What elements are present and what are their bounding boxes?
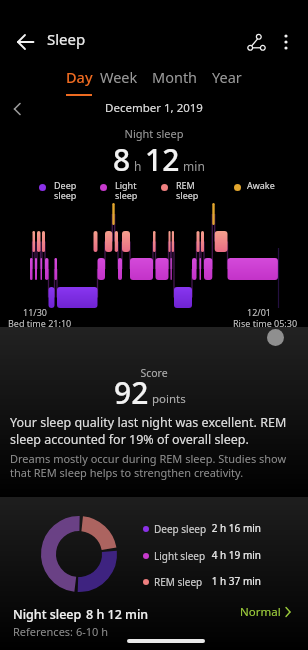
staticText: min <box>180 158 205 174</box>
staticText: 12 <box>145 139 180 180</box>
staticText: Light sleep <box>154 549 206 563</box>
staticText: Rise time 05:30 <box>233 317 298 329</box>
staticText: Week <box>100 67 138 87</box>
staticText: December 1, 2019 <box>0 100 308 116</box>
staticText: 11/30 <box>8 306 62 318</box>
button[interactable] <box>146 64 206 98</box>
button[interactable]: Normal <box>240 601 300 623</box>
staticText: Year <box>212 67 242 87</box>
staticText: 8 <box>113 139 131 180</box>
staticText: 92 <box>114 372 149 413</box>
staticText: Sleep <box>47 29 86 49</box>
staticText: Your sleep quality last night was excell… <box>10 414 287 447</box>
staticText: Deep sleep <box>54 179 77 202</box>
staticText: 4 h 19 min <box>191 548 261 562</box>
staticText: 1 h 37 min <box>191 574 261 588</box>
staticText: REM sleep <box>154 575 203 589</box>
staticText: Dreams mostly occur during REM sleep. St… <box>10 451 287 481</box>
staticText: REM sleep <box>176 179 199 202</box>
staticText: Awake <box>247 179 275 191</box>
staticText: Bed time 21:10 <box>8 317 72 329</box>
staticText: 2 h 16 min <box>191 521 261 535</box>
staticText: Night sleep <box>13 606 82 623</box>
staticText: Day <box>66 67 93 87</box>
staticText: 8 h 12 min <box>86 606 149 623</box>
staticText: Month <box>152 67 198 87</box>
button[interactable] <box>240 26 272 58</box>
button[interactable] <box>267 329 284 346</box>
button[interactable] <box>94 64 144 98</box>
staticText: h <box>131 158 145 174</box>
staticText: Night sleep <box>0 126 308 141</box>
button[interactable] <box>206 64 252 98</box>
staticText: points <box>149 391 186 407</box>
button[interactable] <box>56 64 102 98</box>
button[interactable] <box>8 26 42 58</box>
staticText: Score <box>0 366 308 380</box>
staticText: Normal <box>240 604 281 620</box>
button[interactable] <box>4 96 30 122</box>
staticText: Deep sleep <box>154 522 207 536</box>
staticText: 12/01 <box>231 306 287 318</box>
staticText: References: 6-10 h <box>13 624 108 639</box>
button[interactable] <box>272 26 300 58</box>
staticText: Light sleep <box>115 179 138 202</box>
